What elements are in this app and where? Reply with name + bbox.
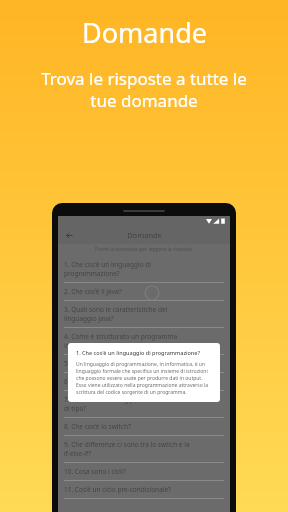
button[interactable]: 9. Che differenze ci sono tra lo swtich … (58, 436, 230, 463)
button[interactable]: 8. Che cos'è lo switch? (58, 418, 230, 436)
staticText: 7. Che cos'è il casting per la conversio… (64, 395, 187, 413)
staticText: 3. Quali sono le caratteristiche del lin… (64, 305, 168, 323)
button[interactable]: 1. Che cos'è un linguaggio di programmaz… (58, 256, 230, 283)
button[interactable]: 1. Che cos'è un linguaggio di programmaz… (68, 343, 220, 402)
button[interactable]: 3. Quali sono le caratteristiche del lin… (58, 301, 230, 328)
staticText: Trova le risposte a tutte le tue domande (12, 67, 276, 112)
button[interactable]: 6. Quali sono i tipi di dato? (58, 373, 230, 391)
staticText: 5. Che cos'è una variabile? (64, 359, 144, 368)
staticText: 9. Che differenze ci sono tra lo swtich … (64, 440, 190, 458)
button[interactable]: 4. Come è strutturato un programma in Ja… (58, 328, 230, 355)
staticText: 10. Cosa sono i cicli? (64, 467, 126, 476)
button[interactable]: 7. Che cos'è il casting per la conversio… (58, 391, 230, 418)
staticText: Domande (82, 14, 207, 51)
button[interactable]: 10. Cosa sono i cicli? (58, 463, 230, 481)
staticText: Premi la domanda per leggere la risposta… (58, 246, 230, 253)
button[interactable]: Back (62, 228, 76, 242)
staticText: 1. Che cos'è un linguaggio di programmaz… (64, 260, 151, 278)
button[interactable]: 2. Che cos'è il Java? (58, 283, 230, 301)
staticText: Domande (127, 230, 162, 240)
staticText: 2. Che cos'è il Java? (64, 287, 122, 296)
button[interactable]: 5. Che cos'è una variabile? (58, 355, 230, 373)
staticText: 8. Che cos'è lo switch? (64, 422, 131, 431)
staticText: Un linguaggio di programmazione, in info… (76, 361, 212, 396)
staticText: 1. Che cos'è un linguaggio di programmaz… (76, 349, 200, 356)
staticText: 11. Cos'è un ciclo pre-condizionale? (64, 485, 171, 494)
button[interactable]: 11. Cos'è un ciclo pre-condizionale? (58, 481, 230, 499)
staticText: 6. Quali sono i tipi di dato? (64, 377, 145, 386)
staticText: 4. Come è strutturato un programma in Ja… (64, 332, 178, 350)
